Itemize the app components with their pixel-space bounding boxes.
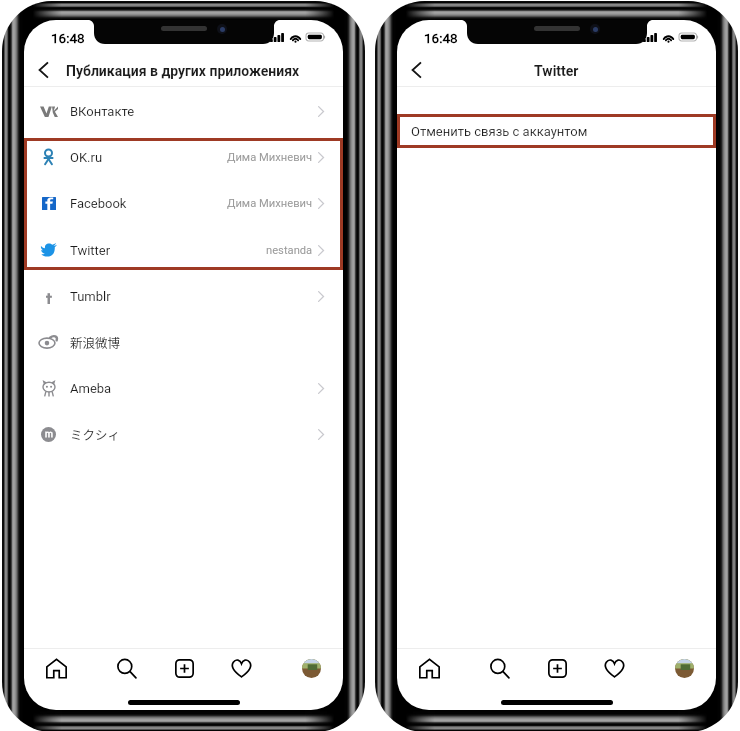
button[interactable]: New post <box>164 650 204 686</box>
staticText: Публикация в других приложениях <box>66 63 300 79</box>
button[interactable]: New post <box>537 650 577 686</box>
staticText: 新浪微博 <box>70 333 121 351</box>
staticText: m <box>45 429 53 440</box>
button[interactable]: OK.ru <box>24 134 343 180</box>
staticText: Twitter <box>534 63 579 79</box>
staticText: Дима Михневич <box>227 151 313 164</box>
staticText: Tumblr <box>70 289 111 304</box>
button[interactable]: Profile <box>291 650 331 686</box>
staticText: Дима Михневич <box>227 197 313 210</box>
staticText: Facebook <box>70 196 127 211</box>
button[interactable]: ВКонтакте <box>24 88 343 134</box>
button[interactable]: Search <box>106 650 146 686</box>
staticText: OK.ru <box>70 150 103 165</box>
button[interactable]: Back <box>26 48 60 82</box>
button[interactable]: t <box>24 273 343 319</box>
staticText: ミクシィ <box>70 425 121 443</box>
staticText: Ameba <box>70 381 112 396</box>
button[interactable]: Home <box>409 650 449 686</box>
button[interactable]: Activity <box>594 650 634 686</box>
staticText: nestanda <box>266 244 313 257</box>
staticText: ВКонтакте <box>70 104 135 119</box>
staticText: Twitter <box>70 243 111 258</box>
button[interactable]: Home <box>36 650 76 686</box>
button[interactable]: Back <box>399 48 433 82</box>
button[interactable]: Facebook <box>24 180 343 226</box>
button[interactable]: Отменить связь с аккаунтом <box>397 114 716 148</box>
button[interactable]: Search <box>479 650 519 686</box>
button[interactable]: Profile <box>664 650 704 686</box>
button[interactable]: m <box>24 411 343 457</box>
button[interactable]: Ameba <box>24 365 343 411</box>
staticText: t <box>46 288 53 304</box>
button[interactable]: Activity <box>221 650 261 686</box>
button[interactable]: Twitter <box>24 227 343 273</box>
staticText: Отменить связь с аккаунтом <box>411 124 588 139</box>
staticText: 16:48 <box>424 30 458 46</box>
staticText: 16:48 <box>51 30 85 46</box>
button[interactable]: 新浪微博 <box>24 319 343 365</box>
